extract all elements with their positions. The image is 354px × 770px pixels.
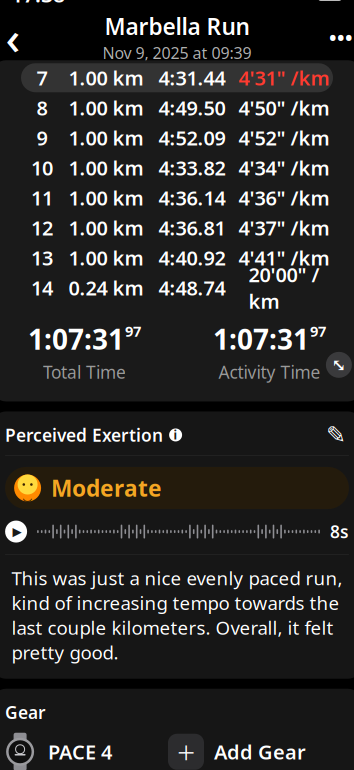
staticText: 4:48.74 <box>158 274 225 301</box>
staticText: 1.00 km <box>68 214 143 241</box>
staticText: 4:36.14 <box>158 184 225 211</box>
button[interactable]: Edit <box>323 424 349 446</box>
staticText: This was just a nice evenly paced run, k… <box>11 566 342 665</box>
staticText: 4'52" /km <box>238 124 329 151</box>
staticText: 1:07:31 <box>213 320 309 357</box>
staticText: 4'37" /km <box>238 214 329 241</box>
staticText: 1.00 km <box>68 154 143 181</box>
staticText: 4'34" /km <box>238 154 329 181</box>
staticText: 4:31.44 <box>158 64 225 91</box>
staticText: 4:52.09 <box>158 124 225 151</box>
staticText: Add Gear <box>214 738 306 765</box>
staticText: Marbella Run <box>104 11 249 41</box>
staticText: 14 <box>31 274 53 301</box>
staticText: 4:40.92 <box>158 244 225 271</box>
staticText: 4'36" /km <box>238 184 329 211</box>
staticText: 0.24 km <box>68 274 143 301</box>
staticText: Perceived Exertion <box>5 423 163 446</box>
button[interactable]: Back <box>0 17 35 57</box>
staticText: 4'41" /km <box>238 244 329 271</box>
staticText: 8s <box>330 520 349 543</box>
staticText: Moderate <box>51 473 162 503</box>
staticText: ✎ <box>326 421 346 448</box>
button[interactable]: ‿ <box>5 467 349 509</box>
button[interactable]: + <box>168 734 306 770</box>
staticText: Activity Time <box>218 360 320 383</box>
staticText: PACE 4 <box>48 738 112 765</box>
staticText: Gear <box>5 701 46 724</box>
staticText: 17:38 <box>11 0 65 8</box>
staticText: 10 <box>31 154 53 181</box>
staticText: 1.00 km <box>68 244 143 271</box>
staticText: ‹ <box>6 7 21 67</box>
staticText: i <box>174 427 178 443</box>
button[interactable]: PACE 4 <box>1 732 112 770</box>
staticText: 11 <box>31 184 53 211</box>
staticText: Nov 9, 2025 at 09:39 <box>102 42 251 63</box>
button[interactable]: Play voice note <box>5 521 27 543</box>
staticText: 4'50" /km <box>238 94 329 121</box>
staticText: ⤡ <box>331 355 346 375</box>
staticText: 1.00 km <box>68 184 143 211</box>
staticText: 8 <box>36 94 47 121</box>
staticText: 4:36.81 <box>158 214 225 241</box>
staticText: 12 <box>31 214 53 241</box>
staticText: 13 <box>31 244 53 271</box>
button[interactable]: About perceived exertion <box>163 428 182 441</box>
staticText: ‿ <box>23 481 33 502</box>
button[interactable]: Expand splits <box>326 352 352 378</box>
staticText: + <box>177 730 195 770</box>
staticText: 7 <box>36 64 47 91</box>
staticText: 4:49.50 <box>158 94 225 121</box>
staticText: 1.00 km <box>68 124 143 151</box>
staticText: 20'00" /km <box>248 261 319 314</box>
staticText: 1.00 km <box>68 94 143 121</box>
staticText: 4'31" /km <box>238 64 329 91</box>
button[interactable]: More <box>319 17 354 57</box>
staticText: 9 <box>36 124 47 151</box>
staticText: 29 <box>322 0 338 4</box>
staticText: 97 <box>125 321 141 341</box>
staticText: 1:07:31 <box>28 320 124 357</box>
staticText: 4:33.82 <box>158 154 225 181</box>
staticText: 97 <box>310 321 326 341</box>
staticText: ▶ <box>13 525 22 538</box>
staticText: 1.00 km <box>68 64 143 91</box>
staticText: Total Time <box>43 360 126 383</box>
staticText: ••• <box>329 24 353 51</box>
